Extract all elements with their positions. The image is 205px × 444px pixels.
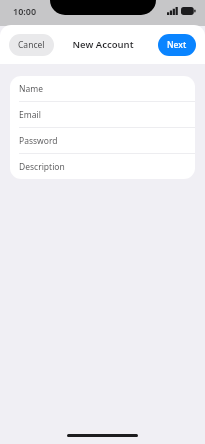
staticText: Name xyxy=(19,83,43,95)
staticText: Password xyxy=(19,135,58,147)
staticText: Next xyxy=(167,39,187,51)
staticText: New Account xyxy=(72,38,134,51)
button[interactable]: Description xyxy=(10,154,195,179)
other: Home indicator xyxy=(67,434,138,437)
button[interactable]: Next xyxy=(158,34,196,56)
button[interactable]: Password xyxy=(10,128,195,153)
button[interactable]: Email xyxy=(10,102,195,127)
staticText: Description xyxy=(19,161,65,173)
staticText: Email xyxy=(19,109,41,121)
staticText: Cancel xyxy=(18,39,45,51)
staticText: 10:00 xyxy=(13,5,37,17)
button[interactable]: Name xyxy=(10,76,195,101)
button[interactable]: Cancel xyxy=(9,34,54,56)
